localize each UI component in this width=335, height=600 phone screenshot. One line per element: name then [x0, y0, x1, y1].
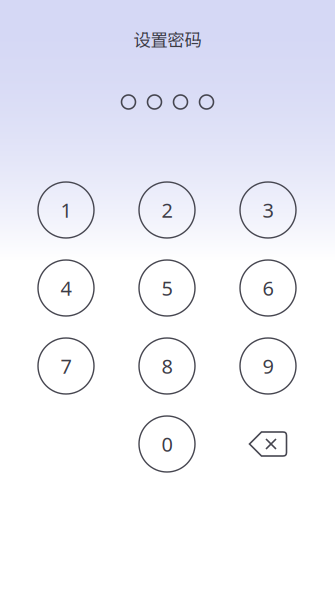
button[interactable]: 5: [139, 260, 195, 316]
button[interactable]: 6: [240, 260, 296, 316]
button[interactable]: 3: [240, 182, 296, 238]
button[interactable]: 9: [240, 338, 296, 394]
button[interactable]: 4: [38, 260, 94, 316]
staticText: 1: [60, 197, 71, 223]
staticText: 8: [161, 353, 172, 379]
staticText: 3: [262, 197, 273, 223]
staticText: 5: [161, 275, 172, 301]
button[interactable]: Delete: [240, 416, 296, 472]
button[interactable]: 8: [139, 338, 195, 394]
button[interactable]: 0: [139, 416, 195, 472]
staticText: 设置密码: [133, 26, 201, 52]
staticText: 2: [161, 197, 172, 223]
staticText: 7: [60, 353, 71, 379]
button[interactable]: 2: [139, 182, 195, 238]
staticText: 6: [262, 275, 273, 301]
button[interactable]: 1: [38, 182, 94, 238]
staticText: 4: [60, 275, 71, 301]
button[interactable]: 7: [38, 338, 94, 394]
staticText: 0: [161, 431, 172, 457]
staticText: 9: [262, 353, 273, 379]
